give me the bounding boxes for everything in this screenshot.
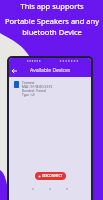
staticText: Bonded : Paired <box>22 89 46 93</box>
button[interactable]: Connect <box>14 81 91 97</box>
button[interactable]: Back <box>9 66 19 76</box>
staticText: DISCONNECT <box>42 174 63 178</box>
staticText: Available Devices <box>30 67 71 74</box>
button[interactable]: DISCONNECT <box>35 172 66 180</box>
staticText: Portable Speakers and any bluetooth Devi… <box>5 16 99 37</box>
staticText: MAC: 5F:9E:8D:33:F2 <box>22 85 53 89</box>
staticText: Connect <box>22 81 35 85</box>
staticText: Type : LE <box>22 93 36 97</box>
staticText: This app supports <box>20 1 84 11</box>
